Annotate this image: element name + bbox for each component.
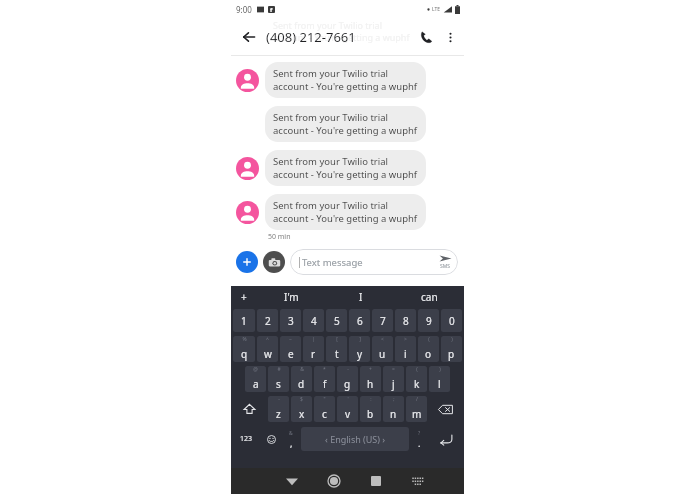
staticText: can <box>421 290 438 304</box>
staticText: ( <box>416 366 418 373</box>
button[interactable]: = <box>383 366 404 392</box>
button[interactable]: ) <box>429 366 450 392</box>
staticText: Sent from your Twilio trial <box>273 67 389 80</box>
button[interactable]: ; <box>383 396 404 422</box>
button[interactable]: 0 <box>441 309 462 332</box>
button[interactable]: Sent from your Twilio trial <box>265 150 426 186</box>
button[interactable]: Sent from your Twilio trial <box>265 62 426 98</box>
button[interactable]: 7 <box>372 309 393 332</box>
button[interactable]: ‹ English (US) › <box>301 427 409 451</box>
staticText: w <box>264 347 272 361</box>
button[interactable]: 5 <box>326 309 347 332</box>
button[interactable]: Text message <box>290 249 458 275</box>
button[interactable]: " <box>314 396 335 422</box>
staticText: j <box>392 377 395 391</box>
button[interactable]: Hide keyboard <box>270 468 313 494</box>
button[interactable]: 123 <box>232 424 260 454</box>
staticText: 8 <box>403 314 409 328</box>
staticText: , <box>290 437 293 449</box>
button[interactable]: Camera <box>263 251 285 273</box>
button[interactable]: ^ <box>257 336 278 362</box>
button[interactable]: @ <box>245 366 266 392</box>
staticText: account - You're getting a wuphf <box>273 124 418 137</box>
staticText: 7 <box>380 314 386 328</box>
staticText: Sent from your Twilio trial <box>273 19 382 31</box>
button[interactable]: + <box>231 286 257 307</box>
button[interactable]: ( <box>418 336 439 362</box>
button[interactable]: | <box>303 336 324 362</box>
button[interactable]: Sent from your Twilio trial <box>265 194 426 230</box>
button[interactable]: Home <box>313 468 355 494</box>
button[interactable]: 2 <box>257 309 278 332</box>
button[interactable]: (408) 212-7661 <box>266 28 356 46</box>
button[interactable]: 9 <box>418 309 439 332</box>
button[interactable]: * <box>314 366 335 392</box>
button[interactable]: Sent from your Twilio trial <box>265 106 426 142</box>
button[interactable]: Switch keyboard <box>397 468 439 494</box>
staticText: # <box>277 366 281 373</box>
button[interactable]: Call <box>413 24 439 50</box>
button[interactable]: + <box>360 366 381 392</box>
button[interactable]: 6 <box>349 309 370 332</box>
staticText: - <box>347 366 349 373</box>
staticText: Sent from your Twilio trial <box>273 199 389 212</box>
staticText: " <box>323 396 326 403</box>
staticText: p <box>448 347 455 361</box>
button[interactable]: ' <box>337 396 358 422</box>
button[interactable]: % <box>233 336 255 362</box>
button[interactable]: Backspace <box>428 394 463 424</box>
button[interactable]: I'm <box>257 286 326 307</box>
staticText: account - You're getting a wuphf <box>273 168 418 181</box>
button[interactable]: Emoji <box>260 424 282 454</box>
staticText: o <box>425 347 432 361</box>
staticText: + <box>241 290 247 304</box>
button[interactable]: [ <box>326 336 347 362</box>
staticText: & <box>289 430 293 437</box>
staticText: Text message <box>302 256 363 269</box>
button[interactable]: > <box>395 336 416 362</box>
staticText: 0 <box>449 314 455 328</box>
button[interactable]: # <box>268 366 289 392</box>
staticText: SMS <box>440 263 451 270</box>
button[interactable]: ~ <box>280 336 301 362</box>
button[interactable]: - <box>337 366 358 392</box>
staticText: $ <box>300 396 303 403</box>
button[interactable]: $ <box>291 396 312 422</box>
button[interactable]: ) <box>441 336 462 362</box>
button[interactable]: 4 <box>303 309 324 332</box>
button[interactable]: Enter <box>428 424 463 454</box>
button[interactable]: & <box>282 424 299 454</box>
staticText: * <box>323 366 326 373</box>
button[interactable]: ? <box>411 424 428 454</box>
staticText: 123 <box>240 434 253 444</box>
button[interactable]: More options <box>439 26 461 48</box>
staticText: 5 <box>334 314 340 328</box>
button[interactable]: Recent apps <box>355 468 397 494</box>
staticText: I <box>359 290 363 304</box>
staticText: m <box>412 407 422 421</box>
button[interactable]: / <box>406 396 427 422</box>
button[interactable]: Add attachment <box>236 251 258 273</box>
button[interactable]: 1 <box>233 309 255 332</box>
staticText: a <box>253 377 259 391</box>
button[interactable]: - <box>268 396 289 422</box>
staticText: h <box>367 377 374 391</box>
staticText: - <box>278 396 280 403</box>
button[interactable]: Back <box>236 24 262 50</box>
staticText: q <box>241 347 248 361</box>
button[interactable]: I <box>326 286 395 307</box>
button[interactable]: ] <box>349 336 370 362</box>
button[interactable]: Shift <box>232 394 267 424</box>
button[interactable]: 3 <box>280 309 301 332</box>
button[interactable]: ( <box>406 366 427 392</box>
button[interactable]: can <box>395 286 464 307</box>
staticText: 4 <box>311 314 317 328</box>
button[interactable]: 8 <box>395 309 416 332</box>
staticText: . <box>418 437 421 449</box>
button[interactable]: & <box>291 366 312 392</box>
staticText: ‹ English (US) › <box>325 433 386 445</box>
button[interactable]: : <box>360 396 381 422</box>
staticText: f <box>323 377 327 391</box>
staticText: i <box>404 347 407 361</box>
button[interactable]: < <box>372 336 393 362</box>
